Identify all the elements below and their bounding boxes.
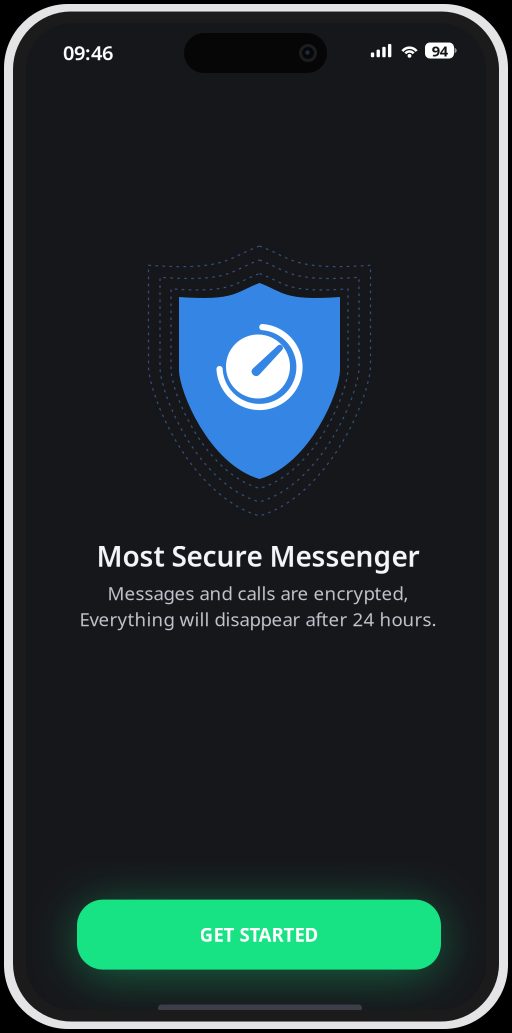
- staticText: Most Secure Messenger: [96, 537, 419, 575]
- staticText: Messages and calls are encrypted,: [107, 581, 408, 605]
- staticText: 94: [432, 41, 448, 61]
- staticText: Everything will disappear after 24 hours…: [79, 607, 436, 631]
- staticText: GET STARTED: [199, 922, 318, 947]
- button[interactable]: GET STARTED: [77, 900, 441, 970]
- staticText: 09:46: [63, 39, 113, 66]
